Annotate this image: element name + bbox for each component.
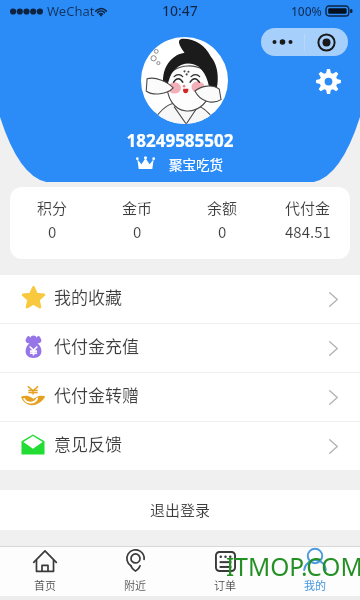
button[interactable]: 首页 (0, 547, 90, 596)
staticText: WeChat (47, 2, 95, 20)
button[interactable]: 代付金 (265, 187, 350, 259)
button[interactable]: 订单 (180, 547, 270, 596)
button[interactable]: 代付金充值 (0, 324, 360, 372)
button[interactable]: 退出登录 (0, 490, 360, 530)
button[interactable]: 我的 (270, 547, 360, 596)
staticText: 代付金转赠 (54, 382, 139, 407)
staticText: 10:47 (162, 1, 198, 20)
button[interactable]: 附近 (90, 547, 180, 596)
staticText: 积分 (37, 197, 68, 219)
staticText: 退出登录 (150, 499, 211, 521)
staticText: 代付金充值 (54, 333, 139, 358)
staticText: 金币 (122, 197, 153, 219)
staticText: 0 (133, 221, 142, 243)
staticText: 代付金 (285, 197, 331, 219)
staticText: 附近 (124, 577, 146, 593)
button[interactable]: Avatar (141, 37, 228, 124)
staticText: 余额 (207, 197, 238, 219)
button[interactable]: Settings (313, 66, 343, 96)
button[interactable]: 我的收藏 (0, 275, 360, 323)
staticText: 意见反馈 (54, 431, 122, 456)
staticText: 18249585502 (0, 129, 360, 152)
staticText: 订单 (214, 577, 236, 593)
staticText: 我的收藏 (54, 284, 122, 309)
staticText: ITMOP.COM (226, 550, 360, 583)
button[interactable]: Close (305, 28, 348, 56)
staticText: 100% (291, 3, 322, 19)
staticText: 0 (218, 221, 227, 243)
button[interactable]: 意见反馈 (0, 422, 360, 470)
button[interactable]: 余额 (180, 187, 265, 259)
staticText: 0 (48, 221, 57, 243)
staticText: 484.51 (285, 221, 331, 243)
button[interactable]: 金币 (95, 187, 180, 259)
button[interactable]: More (261, 28, 304, 56)
button[interactable]: 代付金转赠 (0, 373, 360, 421)
staticText: 聚宝吃货 (169, 154, 223, 172)
button[interactable]: 积分 (10, 187, 95, 259)
staticText: 首页 (34, 577, 56, 593)
staticText: 我的 (304, 577, 326, 593)
